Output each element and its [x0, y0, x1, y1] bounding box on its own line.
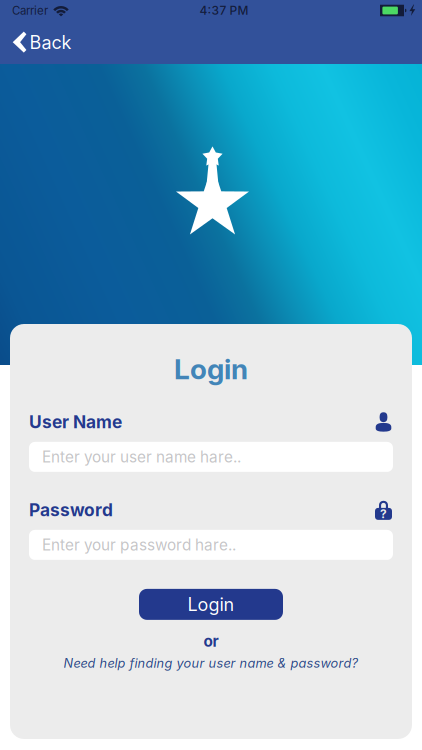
button[interactable]: Need help finding your user name & passw… [10, 655, 412, 671]
staticText: User Name [29, 411, 122, 432]
staticText: Enter your user name hare.. [42, 448, 241, 466]
button[interactable]: Enter your user name hare.. [29, 442, 393, 472]
staticText: Carrier [12, 4, 48, 17]
staticText: or [203, 632, 218, 650]
staticText: Password [29, 499, 113, 520]
staticText: ? [380, 507, 387, 521]
staticText: 4:37 PM [199, 3, 248, 18]
staticText: Need help finding your user name & passw… [63, 655, 358, 671]
staticText: Back [29, 32, 71, 53]
staticText: Login [187, 593, 234, 615]
staticText: Enter your password hare.. [42, 536, 236, 554]
button[interactable]: Back [0, 21, 422, 64]
button[interactable]: Enter your password hare.. [29, 530, 393, 560]
staticText: Login [174, 352, 248, 386]
button[interactable]: Login [139, 589, 283, 620]
